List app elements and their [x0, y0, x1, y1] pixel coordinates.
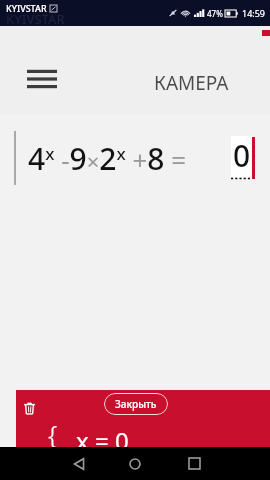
button[interactable]: Menu: [23, 65, 61, 93]
button[interactable]: Back: [62, 447, 96, 480]
staticText: 0: [233, 135, 251, 176]
staticText: 47%: [207, 8, 223, 19]
button[interactable]: Recent apps: [177, 447, 211, 480]
staticText: КАМЕРА: [154, 70, 229, 96]
staticText: {: [48, 416, 58, 451]
staticText: Закрыть: [115, 397, 157, 411]
button[interactable]: Закрыть: [104, 393, 168, 415]
button[interactable]: 0: [231, 136, 252, 180]
staticText: 14:59: [242, 7, 266, 19]
staticText: x = 0: [76, 424, 129, 457]
staticText: KYIVSTAR: [6, 10, 65, 28]
staticText: KYIVSTAR: [6, 2, 47, 14]
staticText: 4x -9×2x +8 =: [28, 138, 187, 179]
button[interactable]: Delete: [17, 396, 41, 420]
button[interactable]: Home: [118, 447, 152, 480]
